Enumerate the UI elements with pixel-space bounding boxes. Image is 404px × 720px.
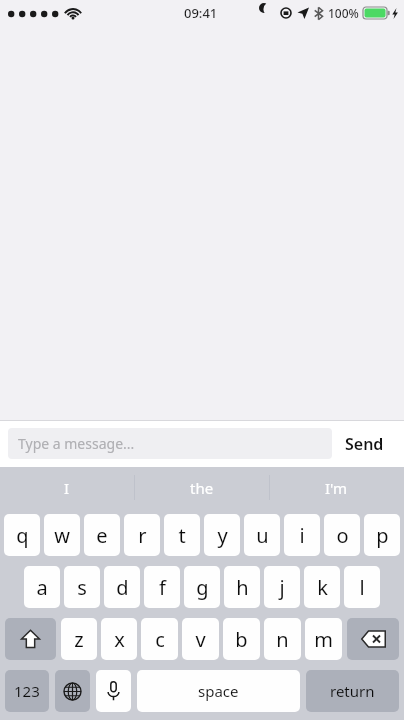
button[interactable]: j	[264, 566, 300, 608]
staticText: 100%	[328, 5, 359, 21]
button[interactable]: e	[84, 514, 120, 556]
button[interactable]: d	[104, 566, 140, 608]
staticText: w	[54, 522, 70, 549]
staticText: f	[159, 574, 166, 601]
staticText: r	[138, 522, 147, 549]
staticText: I'm	[325, 478, 348, 498]
staticText: return	[330, 681, 375, 701]
staticText: t	[178, 522, 186, 549]
staticText: 09:41	[184, 4, 218, 22]
staticText: u	[256, 522, 269, 549]
button[interactable]: p	[364, 514, 400, 556]
staticText: s	[77, 574, 87, 601]
staticText: h	[236, 574, 249, 601]
staticText: I	[64, 478, 70, 498]
button[interactable]: 123	[5, 670, 49, 712]
button[interactable]: i	[284, 514, 320, 556]
button[interactable]: f	[144, 566, 180, 608]
staticText: g	[196, 574, 209, 601]
staticText: b	[235, 626, 248, 653]
button[interactable]: Backspace	[347, 618, 399, 660]
button[interactable]: space	[137, 670, 300, 712]
button[interactable]: z	[61, 618, 97, 660]
staticText: y	[217, 522, 228, 549]
button[interactable]: r	[124, 514, 160, 556]
staticText: k	[317, 574, 328, 601]
button[interactable]: w	[44, 514, 80, 556]
staticText: i	[299, 522, 305, 549]
staticText: space	[198, 681, 239, 701]
staticText: m	[314, 626, 333, 653]
button[interactable]: Shift	[5, 618, 56, 660]
button[interactable]: u	[244, 514, 280, 556]
button[interactable]: o	[324, 514, 360, 556]
staticText: o	[336, 522, 349, 549]
staticText: j	[279, 574, 285, 601]
button[interactable]: s	[64, 566, 100, 608]
staticText: l	[359, 574, 365, 601]
button[interactable]: c	[141, 618, 178, 660]
staticText: 123	[14, 681, 40, 701]
staticText: p	[376, 522, 389, 549]
button[interactable]: n	[264, 618, 301, 660]
button[interactable]: Dictate	[96, 670, 131, 712]
button[interactable]: v	[182, 618, 219, 660]
button[interactable]: y	[204, 514, 240, 556]
staticText: the	[190, 478, 214, 498]
button[interactable]: the	[134, 467, 269, 508]
button[interactable]: return	[306, 670, 399, 712]
button[interactable]: l	[344, 566, 380, 608]
button[interactable]: q	[4, 514, 40, 556]
button[interactable]: b	[223, 618, 260, 660]
button[interactable]: k	[304, 566, 340, 608]
button[interactable]: a	[24, 566, 60, 608]
staticText: z	[74, 626, 84, 653]
staticText: Send	[345, 433, 384, 455]
button[interactable]: t	[164, 514, 200, 556]
button[interactable]: x	[101, 618, 137, 660]
staticText: x	[114, 626, 125, 653]
staticText: n	[276, 626, 289, 653]
staticText: v	[195, 626, 206, 653]
staticText: c	[155, 626, 165, 653]
button[interactable]: I'm	[269, 467, 404, 508]
staticText: a	[36, 574, 48, 601]
staticText: e	[96, 522, 108, 549]
button[interactable]: Change keyboard	[55, 670, 90, 712]
button[interactable]: I	[0, 467, 134, 508]
staticText: d	[116, 574, 129, 601]
button[interactable]: Type a message...	[8, 428, 332, 459]
button[interactable]: Send	[332, 420, 396, 467]
staticText: q	[16, 522, 29, 549]
button[interactable]: m	[305, 618, 342, 660]
button[interactable]: h	[224, 566, 260, 608]
staticText: Type a message...	[18, 434, 135, 453]
button[interactable]: g	[184, 566, 220, 608]
